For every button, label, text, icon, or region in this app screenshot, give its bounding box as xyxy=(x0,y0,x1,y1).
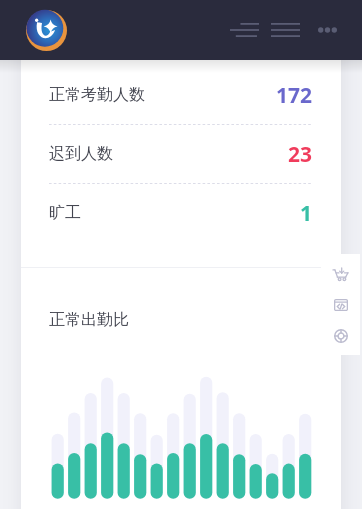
button[interactable]: Add to cart xyxy=(321,258,360,289)
staticText: 172 xyxy=(276,81,313,110)
button[interactable]: Sort xyxy=(227,13,261,47)
button[interactable]: 迟到人数 xyxy=(21,125,341,183)
button[interactable]: Help xyxy=(321,320,360,351)
staticText: 23 xyxy=(288,140,313,169)
staticText: 旷工 xyxy=(49,203,81,223)
button[interactable]: Menu xyxy=(268,13,302,47)
button[interactable]: Code xyxy=(321,289,360,320)
button[interactable]: 旷工 xyxy=(21,184,341,242)
button[interactable]: More options xyxy=(310,13,344,47)
button[interactable]: 正常考勤人数 xyxy=(21,66,341,124)
staticText: 迟到人数 xyxy=(49,144,113,164)
staticText: 正常出勤比 xyxy=(49,310,129,330)
staticText: 正常考勤人数 xyxy=(49,85,145,105)
staticText: 1 xyxy=(300,199,313,228)
